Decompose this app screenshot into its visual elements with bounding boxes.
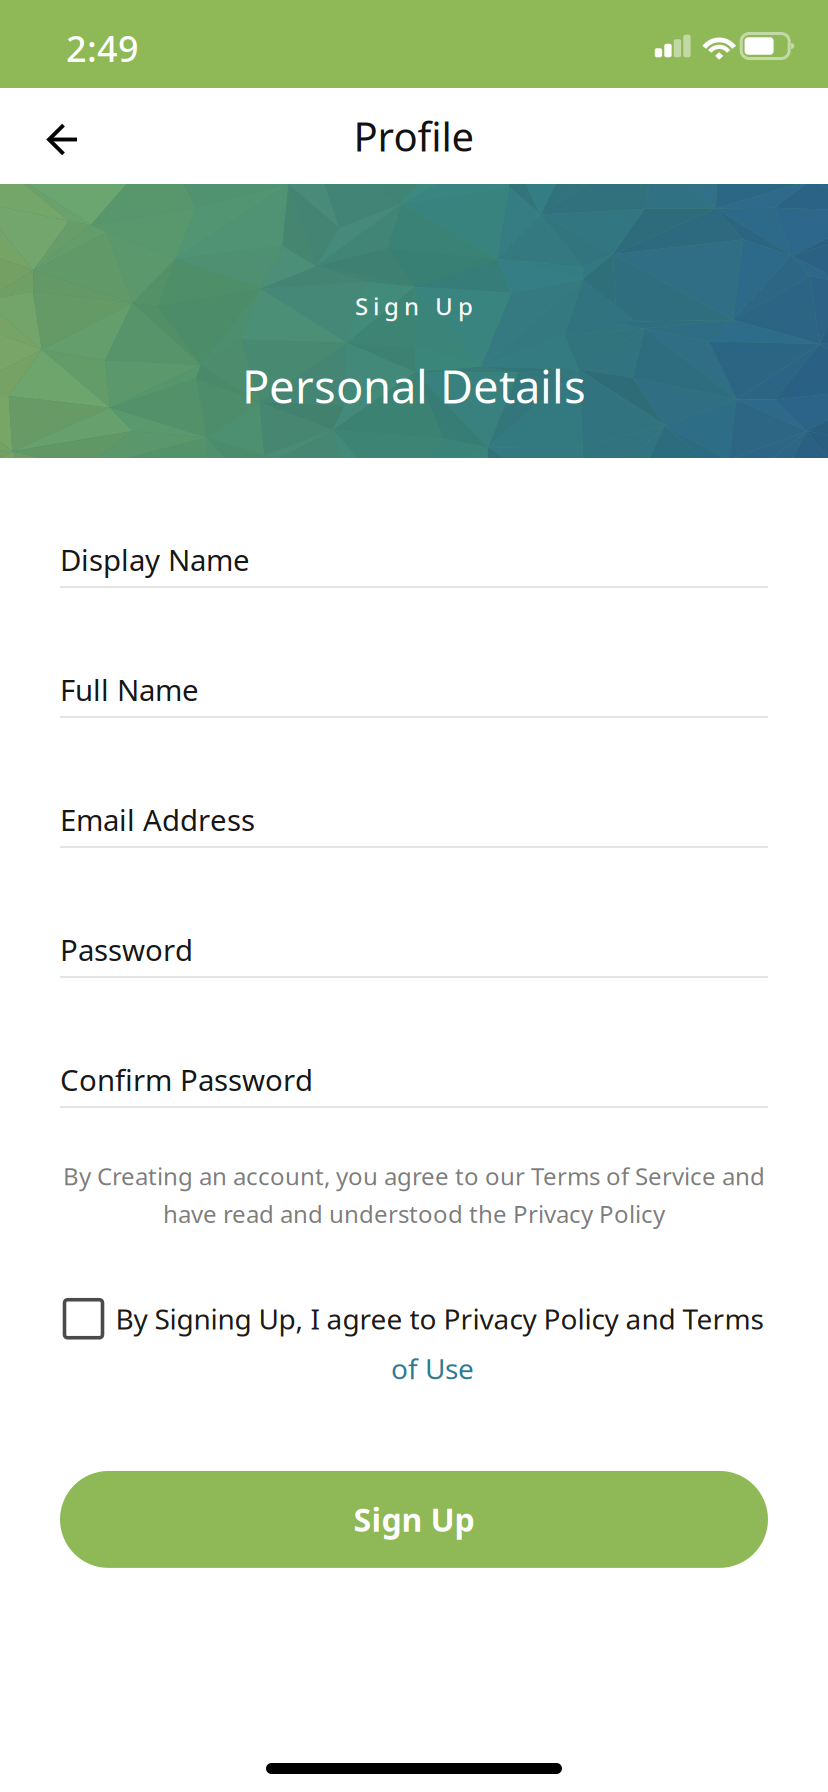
staticText: By Creating an account, you agree to our… bbox=[63, 1160, 765, 1192]
staticText: of Use bbox=[391, 1350, 474, 1387]
staticText: Display Name bbox=[60, 540, 250, 579]
button[interactable]: Email Address bbox=[60, 718, 768, 848]
staticText: Full Name bbox=[60, 670, 199, 709]
button[interactable]: Password bbox=[60, 848, 768, 978]
button[interactable]: Confirm Password bbox=[60, 978, 768, 1108]
staticText: Sign Up bbox=[355, 290, 473, 322]
staticText: 2:49 bbox=[66, 24, 139, 72]
button[interactable]: Full Name bbox=[60, 588, 768, 718]
button[interactable]: Sign Up bbox=[60, 1471, 768, 1568]
staticText: Confirm Password bbox=[60, 1060, 313, 1099]
staticText: have read and understood the Privacy Pol… bbox=[163, 1198, 665, 1230]
button[interactable]: Display Name bbox=[60, 458, 768, 588]
staticText: Sign Up bbox=[353, 1498, 474, 1541]
button[interactable]: By Signing Up, I agree to Privacy Policy… bbox=[60, 1300, 768, 1387]
staticText: Password bbox=[60, 930, 193, 969]
staticText: Email Address bbox=[60, 800, 255, 839]
staticText: By Signing Up, I agree to Privacy Policy… bbox=[115, 1300, 763, 1337]
button[interactable]: Back bbox=[0, 90, 112, 182]
staticText: Personal Details bbox=[242, 356, 586, 416]
staticText: Profile bbox=[353, 109, 474, 162]
